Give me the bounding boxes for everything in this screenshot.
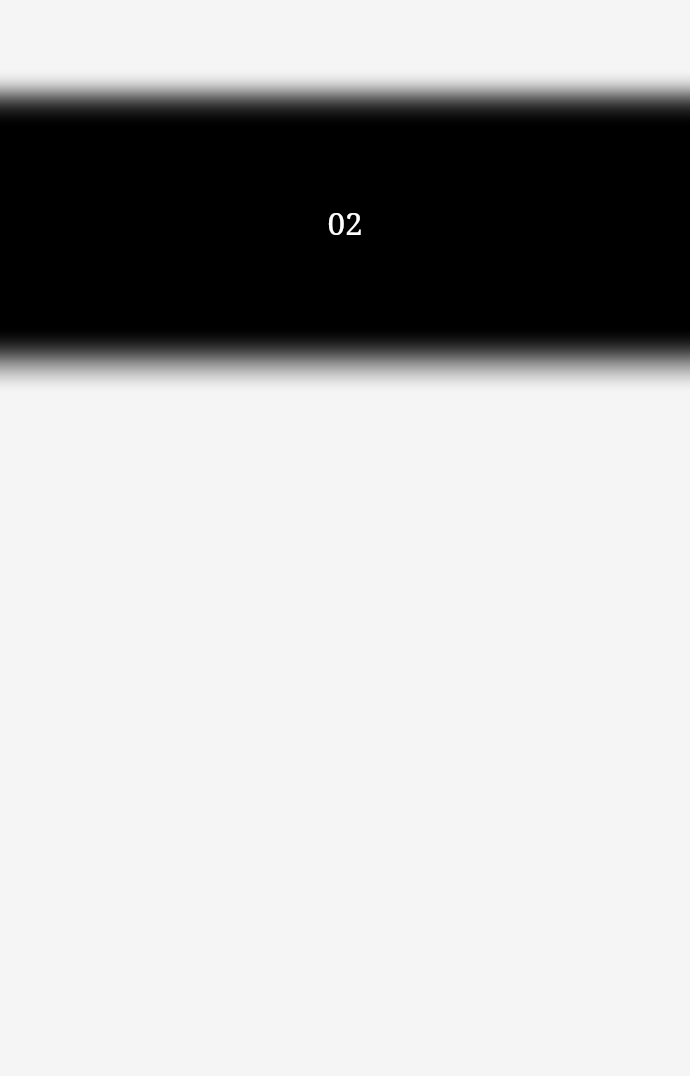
staticText: 02: [327, 201, 363, 244]
button[interactable]: 02: [0, 150, 690, 310]
other: Hour picker: [0, 0, 690, 1076]
